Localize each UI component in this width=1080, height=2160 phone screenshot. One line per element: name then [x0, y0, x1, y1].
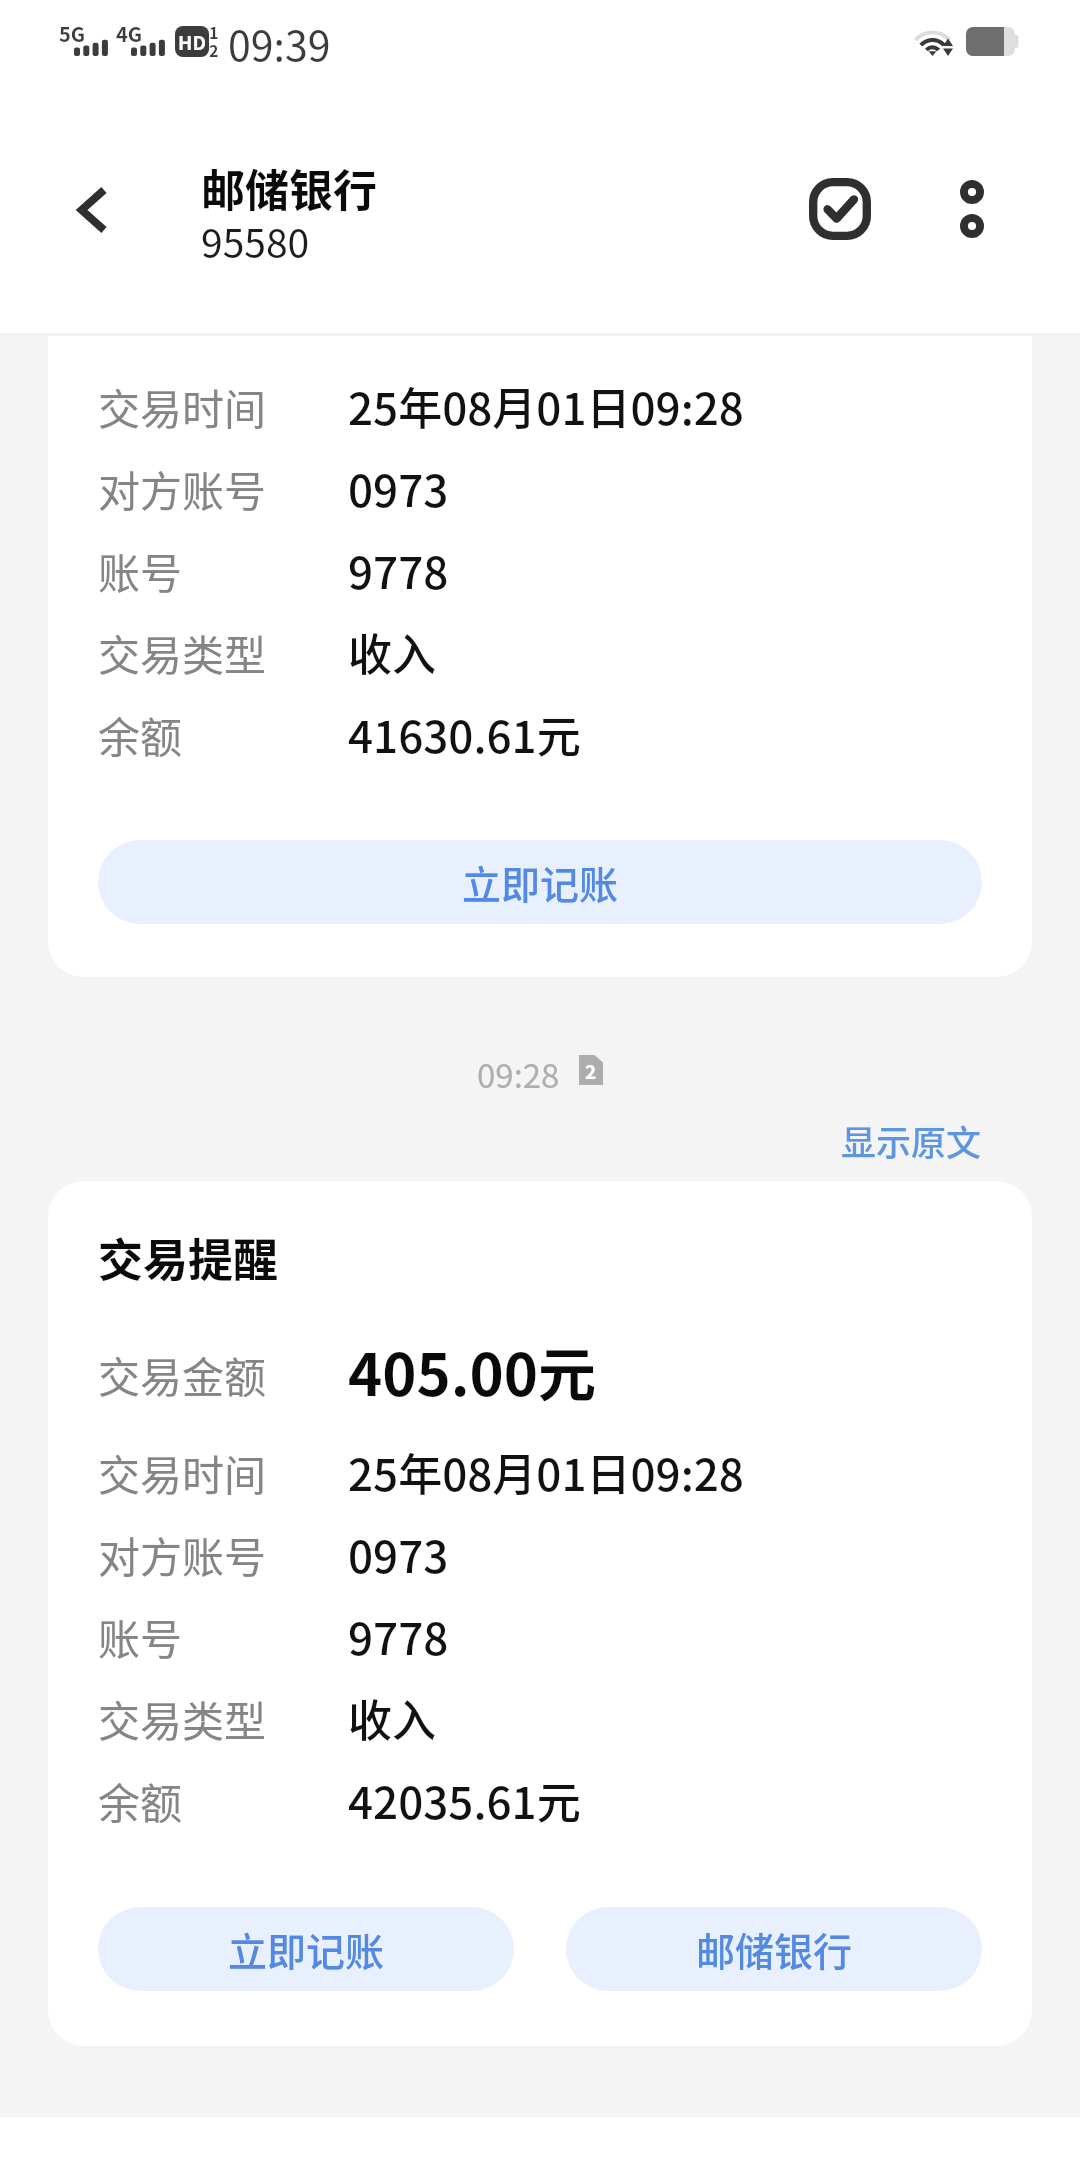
staticText: 4G	[116, 19, 143, 48]
button[interactable]: 显示原文	[837, 1109, 986, 1172]
staticText: 邮储银行	[696, 1921, 853, 1977]
button[interactable]: 立即记账	[98, 1907, 514, 1991]
staticText: 邮储银行	[201, 156, 377, 220]
button[interactable]: 邮储银行	[566, 1907, 982, 1991]
staticText: 显示原文	[841, 1115, 982, 1166]
staticText: 余额	[98, 704, 348, 765]
staticText: 对方账号	[98, 458, 348, 519]
staticText: 25年08月01日09:28	[348, 1440, 744, 1504]
button[interactable]: Select messages	[794, 163, 886, 255]
staticText: 交易提醒	[98, 1225, 279, 1290]
staticText: 立即记账	[462, 854, 619, 910]
staticText: 余额	[98, 1770, 348, 1831]
staticText: 5G	[59, 19, 86, 48]
staticText: 对方账号	[98, 1524, 348, 1585]
staticText: 交易金额	[98, 1344, 348, 1405]
button[interactable]: More options	[926, 163, 1018, 255]
staticText: 账号	[98, 540, 348, 601]
staticText: 收入	[348, 620, 436, 684]
staticText: 09:28	[477, 1050, 560, 1090]
button[interactable]: Back	[47, 164, 139, 256]
staticText: 交易时间	[98, 1442, 348, 1503]
staticText: 09:39	[228, 13, 331, 72]
staticText: 交易时间	[98, 376, 348, 437]
staticText: 收入	[348, 1686, 436, 1750]
staticText: 41630.61元	[348, 702, 581, 766]
staticText: 42035.61元	[348, 1768, 581, 1832]
staticText: 95580	[201, 213, 310, 269]
staticText: 交易类型	[98, 1688, 348, 1749]
button[interactable]: 交易提醒	[48, 1181, 1032, 2046]
staticText: 交易类型	[98, 622, 348, 683]
button[interactable]: 交易时间	[48, 336, 1032, 977]
staticText: 0973	[348, 1522, 449, 1586]
staticText: 405.00元	[348, 1329, 596, 1413]
button[interactable]: 立即记账	[98, 840, 982, 924]
staticText: 9778	[348, 1604, 449, 1668]
staticText: 25年08月01日09:28	[348, 374, 744, 438]
staticText: 1	[209, 20, 219, 43]
staticText: 账号	[98, 1606, 348, 1667]
staticText: 9778	[348, 538, 449, 602]
staticText: 0973	[348, 456, 449, 520]
staticText: 2	[585, 1057, 597, 1085]
staticText: HD	[178, 28, 206, 56]
staticText: 2	[209, 38, 219, 61]
staticText: 立即记账	[228, 1921, 385, 1977]
